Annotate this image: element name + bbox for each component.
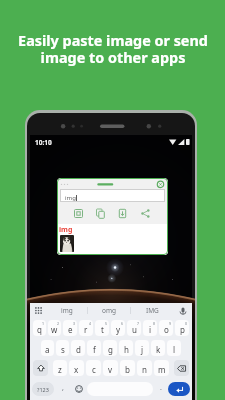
staticText: n [142,364,147,375]
button[interactable]: z [53,360,67,376]
button[interactable]: t [95,320,109,336]
staticText: , [62,383,64,393]
staticText: i [149,324,152,335]
staticText: z [58,364,62,375]
button[interactable]: i [143,320,157,336]
staticText: 8 [153,321,156,326]
button[interactable]: Period [153,378,168,400]
staticText: c [92,364,96,375]
staticText: p [180,324,185,335]
staticText: s [61,344,65,355]
staticText: q [37,324,42,335]
button[interactable]: ?123 [32,382,54,396]
button[interactable]: r [79,320,93,336]
staticText: 0 [185,321,188,326]
staticText: r [84,324,88,335]
button[interactable]: s [56,340,69,356]
staticText: b [125,364,130,375]
staticText: IMG [146,306,159,315]
button[interactable]: Voice input [174,303,192,318]
staticText: omg [102,306,117,315]
staticText: ?123 [37,386,49,393]
staticText: 6 [121,321,124,326]
button[interactable]: Apps [30,303,46,318]
staticText: 10:10 [35,138,52,147]
button[interactable]: c [86,360,101,376]
staticText: 9 [169,321,172,326]
staticText: img [65,194,76,202]
staticText: h [124,344,129,355]
staticText: 1 [42,321,45,326]
button[interactable]: omg [88,303,131,318]
button[interactable]: l [167,340,181,356]
button[interactable]: f [87,340,101,356]
staticText: 3 [73,321,76,326]
button[interactable]: y [111,320,125,336]
button[interactable]: Insert image [70,202,86,224]
button[interactable]: b [120,360,135,376]
staticText: m [158,364,166,375]
staticText: a [45,344,50,355]
staticText: l [173,344,176,355]
staticText: Easily paste image or send image to othe… [18,31,208,67]
button[interactable]: m [154,360,169,376]
staticText: 7 [137,321,140,326]
button[interactable]: img [46,303,88,318]
button[interactable]: j [135,340,149,356]
button[interactable]: n [137,360,152,376]
staticText: t [101,324,104,335]
button[interactable]: Emoji [71,378,87,400]
button[interactable]: v [103,360,118,376]
staticText: y [116,324,121,335]
staticText: 2 [57,321,60,326]
staticText: 4 [89,321,92,326]
button[interactable]: g [103,340,117,356]
button[interactable]: k [151,340,165,356]
staticText: g [108,344,113,355]
button[interactable]: a [41,340,54,356]
button[interactable]: Copy [92,202,108,224]
staticText: o [164,324,169,335]
button[interactable]: u [127,320,141,336]
button[interactable]: Enter [168,382,190,396]
staticText: u [132,324,137,335]
button[interactable]: Save [114,202,130,224]
staticText: 5 [105,321,108,326]
button[interactable]: h [119,340,133,356]
staticText: d [76,344,81,355]
button[interactable]: Comma [54,378,71,400]
button[interactable]: p [175,320,189,336]
button[interactable]: x [69,360,84,376]
button[interactable]: e [63,320,77,336]
button[interactable]: q [33,320,46,336]
button[interactable]: Backspace [174,360,189,376]
button[interactable]: o [159,320,173,336]
staticText: f [93,344,96,355]
button[interactable]: Shift [33,360,48,376]
staticText: j [141,344,144,355]
staticText: img [61,306,73,315]
button[interactable]: IMG [131,303,174,318]
button[interactable]: img [60,189,165,202]
staticText: v [108,364,113,375]
staticText: . [160,383,162,393]
button[interactable]: Share [137,202,153,224]
staticText: img [59,225,73,235]
staticText: w [51,324,58,335]
staticText: x [74,364,79,375]
staticText: k [156,344,161,355]
button[interactable]: d [71,340,85,356]
staticText: e [68,324,73,335]
button[interactable]: w [48,320,61,336]
